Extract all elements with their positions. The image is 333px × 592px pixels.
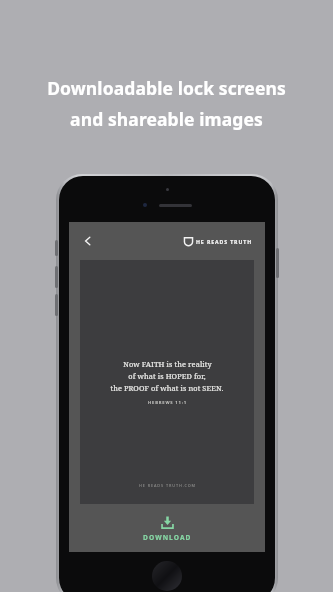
staticText: Downloadable lock screens xyxy=(47,76,286,100)
button[interactable]: HE READS TRUTH xyxy=(184,237,253,246)
button[interactable]: DOWNLOAD xyxy=(143,516,192,542)
staticText: HE READS TRUTH.COM xyxy=(139,483,196,488)
staticText: Now FAITH is the reality xyxy=(123,359,212,369)
staticText: the PROOF of what is not SEEN. xyxy=(110,383,224,393)
staticText: of what is HOPED for, xyxy=(128,371,206,381)
staticText: DOWNLOAD xyxy=(143,533,192,542)
staticText: HEBREWS 11:1 xyxy=(148,400,187,406)
button[interactable]: Back xyxy=(77,230,99,252)
staticText: and shareable images xyxy=(70,107,263,131)
staticText: HE READS TRUTH xyxy=(196,238,253,245)
